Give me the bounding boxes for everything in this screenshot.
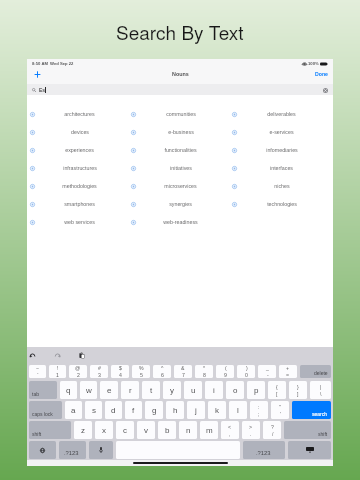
button[interactable]: { (268, 381, 286, 399)
staticText: smartphones (64, 201, 95, 207)
staticText: q (66, 386, 71, 395)
button[interactable]: Undo (27, 350, 38, 361)
button[interactable]: y (163, 381, 181, 399)
button[interactable]: ! (49, 365, 66, 378)
button[interactable]: initiatives (128, 159, 229, 177)
button[interactable]: technologies (229, 195, 330, 213)
button[interactable]: c (116, 421, 134, 439)
button[interactable]: ~ (29, 365, 46, 378)
button[interactable]: hide (288, 441, 331, 459)
button[interactable]: synergies (128, 195, 229, 213)
button[interactable]: : (250, 401, 268, 419)
button[interactable]: u (184, 381, 202, 399)
button[interactable]: | (310, 381, 331, 399)
button[interactable]: ) (237, 365, 255, 378)
button[interactable]: r (121, 381, 139, 399)
button[interactable]: ? (263, 421, 281, 439)
button[interactable]: w (80, 381, 97, 399)
button[interactable]: communities (128, 105, 229, 123)
button[interactable]: Redo (52, 350, 63, 361)
button[interactable]: x (95, 421, 113, 439)
button[interactable]: z (74, 421, 92, 439)
button[interactable]: i (205, 381, 223, 399)
button[interactable]: e (100, 381, 118, 399)
button[interactable]: v (137, 421, 155, 439)
button[interactable]: functionalities (128, 141, 229, 159)
button[interactable]: architectures (27, 105, 128, 123)
button[interactable]: $ (111, 365, 129, 378)
button[interactable]: h (166, 401, 184, 419)
button[interactable]: web-readiness (128, 213, 229, 231)
button[interactable]: t (142, 381, 160, 399)
button[interactable]: tab (29, 381, 57, 399)
button[interactable]: niches (229, 177, 330, 195)
button[interactable]: Es (27, 84, 333, 95)
button[interactable]: infomediaries (229, 141, 330, 159)
button[interactable]: web services (27, 213, 128, 231)
button[interactable]: @ (69, 365, 87, 378)
button[interactable]: Done (310, 67, 332, 80)
button[interactable]: interfaces (229, 159, 330, 177)
button[interactable]: devices (27, 123, 128, 141)
button[interactable]: shift (284, 421, 331, 439)
button[interactable]: % (132, 365, 150, 378)
button[interactable]: smartphones (27, 195, 128, 213)
button[interactable]: + (279, 365, 297, 378)
button[interactable]: k (208, 401, 226, 419)
button[interactable]: ^ (153, 365, 171, 378)
button[interactable]: delete (300, 365, 331, 378)
button[interactable]: d (105, 401, 122, 419)
button[interactable]: n (179, 421, 197, 439)
button[interactable]: < (221, 421, 239, 439)
button[interactable]: caps lock (29, 401, 62, 419)
button[interactable]: > (242, 421, 260, 439)
button[interactable]: l (229, 401, 247, 419)
button[interactable]: f (125, 401, 142, 419)
button[interactable]: microservices (128, 177, 229, 195)
button[interactable]: methodologies (27, 177, 128, 195)
staticText: j (195, 406, 197, 415)
button[interactable]: p (247, 381, 265, 399)
button[interactable]: search (292, 401, 331, 419)
button[interactable]: experiences (27, 141, 128, 159)
button[interactable]: infrastructures (27, 159, 128, 177)
button[interactable]: a (65, 401, 82, 419)
button[interactable]: b (158, 421, 176, 439)
button[interactable]: q (60, 381, 77, 399)
staticText: e (107, 386, 112, 395)
button[interactable]: e-business (128, 123, 229, 141)
button[interactable]: mic (89, 441, 113, 459)
button[interactable]: globe (29, 441, 56, 459)
staticText: b (165, 426, 170, 435)
staticText: : (258, 404, 260, 410)
button[interactable]: deliverables (229, 105, 330, 123)
button[interactable]: Clear text (321, 86, 329, 94)
button[interactable]: m (200, 421, 218, 439)
button[interactable]: Add (28, 68, 46, 81)
button[interactable]: ( (216, 365, 234, 378)
staticText: & (181, 365, 185, 371)
button[interactable]: & (174, 365, 192, 378)
staticText: 8:50 AM (32, 61, 48, 66)
staticText: interfaces (270, 165, 293, 171)
staticText: Wed Sep 22 (50, 61, 74, 66)
staticText: < (228, 424, 232, 430)
button[interactable]: Paste (76, 350, 87, 361)
button[interactable]: g (145, 401, 163, 419)
staticText: experiences (65, 147, 94, 153)
button[interactable]: j (187, 401, 205, 419)
staticText: shift (318, 431, 328, 437)
staticText: x (102, 426, 106, 435)
button[interactable]: } (289, 381, 307, 399)
button[interactable]: s (85, 401, 102, 419)
button[interactable]: * (195, 365, 213, 378)
button[interactable]: .?123 (59, 441, 86, 459)
button[interactable]: " (271, 401, 289, 419)
button[interactable]: # (90, 365, 108, 378)
button[interactable]: _ (258, 365, 276, 378)
button[interactable]: .?123 (243, 441, 285, 459)
button[interactable]: e-services (229, 123, 330, 141)
button[interactable]: o (226, 381, 244, 399)
button[interactable]: shift (29, 421, 71, 439)
